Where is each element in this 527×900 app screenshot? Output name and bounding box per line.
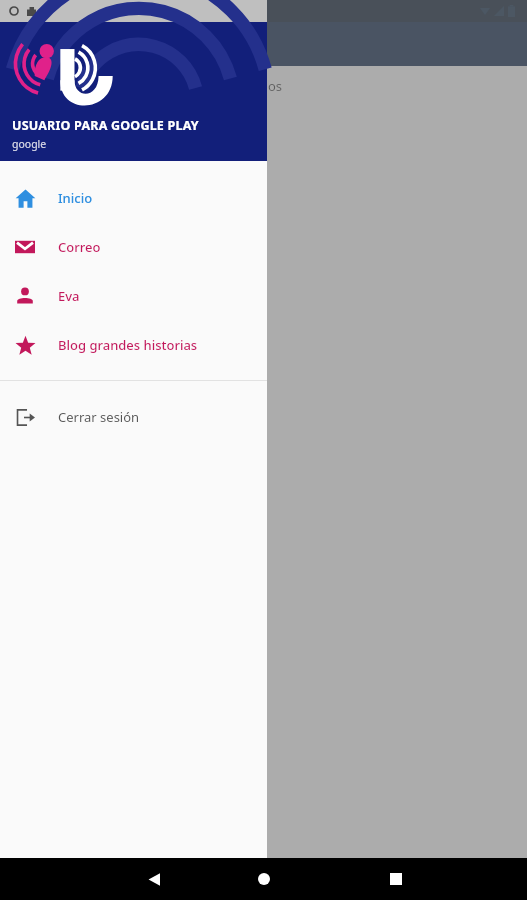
button[interactable]: Home	[244, 859, 284, 899]
button[interactable]: Cerrar sesión	[0, 392, 267, 441]
button[interactable]: Back	[133, 859, 173, 899]
staticText: Correo	[58, 238, 101, 256]
staticText: Sin resultados	[196, 77, 283, 95]
button[interactable]: Correo	[0, 222, 267, 271]
staticText: Eva	[58, 287, 80, 305]
staticText: USUARIO PARA GOOGLE PLAY	[12, 117, 199, 134]
staticText: Blog grandes historias	[58, 336, 198, 354]
button[interactable]: Eva	[0, 271, 267, 320]
button[interactable]: Blog grandes historias	[0, 320, 267, 369]
staticText: Inicio	[58, 189, 93, 207]
button[interactable]: Inicio	[0, 173, 267, 222]
staticText: google	[12, 137, 47, 151]
button[interactable]: Recents	[376, 859, 416, 899]
staticText: Cerrar sesión	[58, 408, 140, 426]
